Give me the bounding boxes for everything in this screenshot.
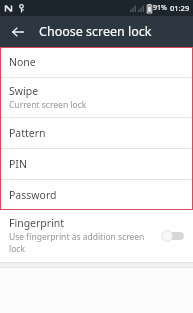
staticText: Pattern — [9, 126, 46, 140]
staticText: None — [9, 55, 36, 69]
button[interactable]: Back — [5, 19, 31, 45]
staticText: Choose screen lock — [39, 23, 152, 40]
button[interactable]: Swipe — [0, 78, 193, 117]
button[interactable]: Toggle fingerprint — [160, 228, 186, 244]
button[interactable]: Password — [0, 180, 193, 210]
staticText: Fingerprint — [9, 216, 65, 230]
staticText: Use fingerprint as addition screen lock — [9, 231, 160, 255]
staticText: 91% — [153, 3, 167, 13]
staticText: PIN — [9, 157, 27, 171]
button[interactable]: Pattern — [0, 118, 193, 148]
button[interactable]: PIN — [0, 149, 193, 179]
staticText: Password — [9, 188, 57, 202]
staticText: 01:29 — [170, 3, 190, 13]
button[interactable]: Fingerprint — [0, 210, 193, 262]
button[interactable]: None — [0, 47, 193, 77]
staticText: Current screen lock — [9, 99, 87, 111]
staticText: Swipe — [9, 84, 39, 98]
